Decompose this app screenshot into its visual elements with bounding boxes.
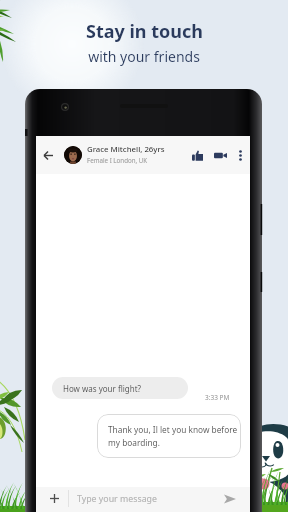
staticText: with your friends	[88, 47, 200, 66]
button[interactable]: Thank you, Il let you know before my boa…	[97, 414, 241, 458]
staticText: 3:33 PM	[205, 393, 230, 402]
button[interactable]: More options	[232, 147, 248, 163]
button[interactable]: Send	[217, 487, 243, 510]
button[interactable]: Like	[187, 145, 208, 166]
staticText: Thank you, Il let you know before my boa…	[108, 424, 241, 449]
button[interactable]: Back	[36, 143, 60, 167]
button[interactable]: How was your flight?	[52, 377, 188, 399]
button[interactable]: Add attachment	[40, 487, 68, 510]
staticText: Grace Mitchell, 26yrs	[87, 144, 165, 155]
staticText: Female I London, UK	[87, 156, 148, 164]
staticText: Stay in touch	[86, 19, 203, 44]
button[interactable]: Video call	[210, 145, 231, 166]
staticText: Type your message	[77, 493, 217, 505]
staticText: How was your flight?	[63, 383, 142, 394]
